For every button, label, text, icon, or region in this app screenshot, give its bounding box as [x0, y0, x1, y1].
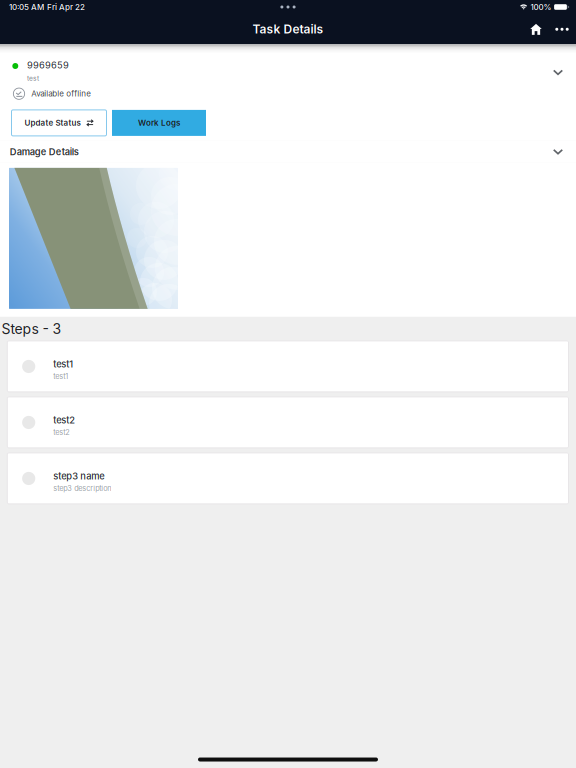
staticText: test	[27, 74, 39, 82]
staticText: 100%	[531, 2, 552, 12]
button[interactable]: Home	[523, 16, 549, 42]
button[interactable]: Update Status	[11, 110, 106, 136]
button[interactable]: test1	[7, 341, 568, 392]
button[interactable]: Work Logs	[112, 110, 206, 136]
staticText: test1	[53, 359, 73, 370]
staticText: step3 description	[53, 484, 111, 493]
staticText: test2	[53, 415, 75, 426]
staticText: Work Logs	[138, 118, 180, 128]
button[interactable]: step3 name	[7, 453, 568, 504]
staticText: Task Details	[252, 22, 323, 36]
staticText: Update Status	[24, 118, 80, 128]
button[interactable]: More options	[549, 16, 575, 42]
staticText: Steps - 3	[1, 320, 61, 337]
button[interactable]: Collapse damage details	[542, 141, 574, 163]
staticText: step3 name	[53, 471, 104, 482]
staticText: 9969659	[27, 59, 69, 71]
staticText: Available offline	[31, 89, 91, 99]
staticText: test1	[53, 372, 68, 381]
staticText: Fri Apr 22	[47, 2, 85, 12]
staticText: test2	[53, 428, 69, 437]
staticText: 10:05 AM	[9, 2, 44, 12]
button[interactable]: test2	[7, 397, 568, 448]
staticText: Damage Details	[10, 146, 79, 158]
button[interactable]: Expand task	[542, 59, 574, 85]
